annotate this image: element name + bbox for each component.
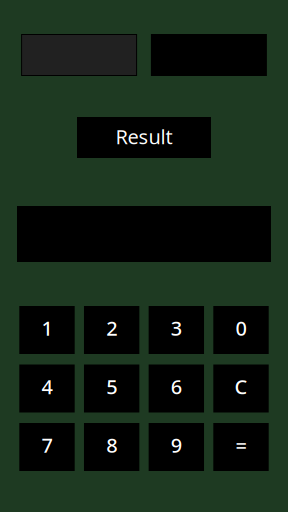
button[interactable]: 1 — [19, 306, 75, 354]
button[interactable]: 2 — [84, 306, 139, 354]
button[interactable]: 7 — [19, 423, 75, 471]
button[interactable]: Result — [77, 117, 211, 158]
button[interactable]: First number — [21, 34, 137, 76]
button[interactable]: 0 — [213, 306, 269, 354]
staticText: 7 — [41, 432, 52, 458]
button[interactable]: = — [213, 423, 269, 471]
staticText: 2 — [106, 315, 117, 341]
button[interactable]: 6 — [149, 364, 204, 412]
staticText: 3 — [171, 315, 182, 341]
staticText: 1 — [41, 315, 52, 341]
button[interactable]: C — [213, 364, 269, 412]
button[interactable]: 8 — [84, 423, 139, 471]
staticText: Result — [115, 123, 172, 150]
staticText: 9 — [171, 432, 182, 458]
button[interactable]: 5 — [84, 364, 139, 412]
staticText: = — [235, 432, 246, 458]
button[interactable]: 9 — [149, 423, 204, 471]
staticText: 6 — [171, 373, 182, 400]
button[interactable]: 4 — [19, 364, 75, 412]
staticText: 0 — [235, 315, 246, 341]
button[interactable]: 3 — [149, 306, 204, 354]
staticText: 5 — [106, 373, 117, 400]
staticText: C — [234, 373, 247, 400]
staticText: 4 — [41, 373, 52, 400]
staticText: 8 — [106, 432, 117, 458]
